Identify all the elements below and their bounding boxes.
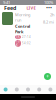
staticText: 2h	[50, 12, 54, 17]
staticText: 8.2 mi	[43, 19, 54, 25]
staticText: Central Park	[15, 24, 30, 34]
staticText: LIVE	[26, 5, 35, 11]
staticText: 54:02	[22, 42, 31, 45]
button[interactable]: Tab 1	[0, 85, 11, 94]
button[interactable]: Feed	[4, 4, 16, 12]
button[interactable]: •••	[46, 4, 52, 12]
staticText: Morning run	[15, 12, 30, 23]
button[interactable]: Tab 2	[11, 85, 22, 94]
staticText: 10K	[16, 40, 20, 47]
staticText: 100%	[44, 0, 53, 5]
button[interactable]: Tab 3	[22, 85, 34, 94]
staticText: •••	[46, 4, 52, 12]
staticText: 27:14	[22, 35, 31, 39]
button[interactable]: Tab 5	[45, 85, 56, 94]
staticText: +	[46, 73, 49, 80]
staticText: 9:41	[3, 0, 10, 5]
button[interactable]: Compose	[44, 73, 51, 80]
staticText: Feed	[4, 4, 16, 12]
button[interactable]: Tab 4	[34, 85, 45, 94]
staticText: 5K	[16, 35, 20, 39]
